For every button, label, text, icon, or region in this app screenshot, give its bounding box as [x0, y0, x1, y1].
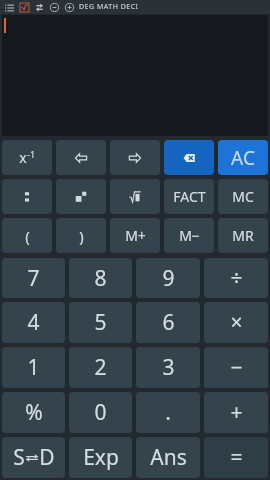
button[interactable]: ×	[204, 302, 268, 343]
staticText: )	[79, 226, 84, 246]
button[interactable]: 0	[69, 392, 132, 433]
button[interactable]: (	[2, 218, 52, 253]
button[interactable]: MC	[218, 179, 268, 214]
button[interactable]: 6	[136, 302, 200, 343]
staticText: 4	[27, 308, 40, 337]
button[interactable]: %	[2, 392, 65, 433]
button[interactable]: S	[2, 437, 65, 478]
button[interactable]: 9	[136, 258, 200, 298]
staticText: (	[25, 226, 30, 246]
staticText: 3	[162, 353, 175, 382]
staticText: 0	[94, 398, 107, 427]
staticText: -1	[27, 148, 36, 160]
staticText: x	[19, 148, 27, 167]
button[interactable]: 2	[69, 347, 132, 388]
button[interactable]: .	[136, 392, 200, 433]
button[interactable]: M+	[110, 218, 160, 253]
staticText: Ans	[150, 443, 187, 472]
staticText: 5	[94, 308, 107, 337]
button[interactable]: Ans	[136, 437, 200, 478]
button[interactable]: )	[56, 218, 106, 253]
staticText: .	[165, 398, 171, 427]
staticText: MC	[232, 187, 254, 206]
button[interactable]: x	[2, 140, 52, 175]
staticText: D	[39, 443, 55, 472]
staticText: S	[13, 443, 25, 472]
staticText: Exp	[83, 443, 119, 472]
button[interactable]: Functions	[18, 1, 31, 14]
button[interactable]: Exp	[69, 437, 132, 478]
button[interactable]: 7	[2, 258, 65, 298]
button[interactable]: ÷	[204, 258, 268, 298]
button[interactable]: Zoom in	[63, 1, 76, 14]
staticText: ×	[230, 308, 243, 337]
button[interactable]: Root	[110, 179, 160, 214]
button[interactable]: AC	[218, 140, 268, 175]
staticText: 8	[94, 264, 107, 293]
button[interactable]: Swap	[33, 1, 46, 14]
button[interactable]: 3	[136, 347, 200, 388]
button[interactable]: Fraction	[2, 179, 52, 214]
button[interactable]: Zoom out	[48, 1, 61, 14]
staticText: 6	[162, 308, 175, 337]
staticText: 7	[27, 264, 40, 293]
button[interactable]: +	[204, 392, 268, 433]
button[interactable]: 4	[2, 302, 65, 343]
staticText: 9	[162, 264, 175, 293]
staticText: +	[230, 398, 243, 427]
staticText: M−	[179, 226, 200, 245]
button[interactable]: Delete	[164, 140, 214, 175]
staticText: −	[230, 353, 243, 382]
button[interactable]: FACT	[164, 179, 214, 214]
button[interactable]: 5	[69, 302, 132, 343]
staticText: AC	[231, 145, 255, 171]
staticText: FACT	[173, 187, 206, 206]
staticText: MR	[232, 226, 254, 245]
staticText: DEG MATH DECI	[79, 2, 139, 12]
button[interactable]: M−	[164, 218, 214, 253]
button[interactable]: 1	[2, 347, 65, 388]
button[interactable]: MR	[218, 218, 268, 253]
button[interactable]: Menu	[3, 1, 16, 14]
staticText: %	[25, 398, 43, 427]
button[interactable]	[2, 15, 268, 136]
button[interactable]: 8	[69, 258, 132, 298]
button[interactable]: −	[204, 347, 268, 388]
staticText: 1	[27, 353, 40, 382]
staticText: M+	[125, 226, 146, 245]
staticText: ÷	[230, 264, 243, 293]
button[interactable]: =	[204, 437, 268, 478]
button[interactable]: Power	[56, 179, 106, 214]
button[interactable]: Move right	[110, 140, 160, 175]
staticText: =	[230, 443, 243, 472]
button[interactable]: Move left	[56, 140, 106, 175]
staticText: 2	[94, 353, 107, 382]
